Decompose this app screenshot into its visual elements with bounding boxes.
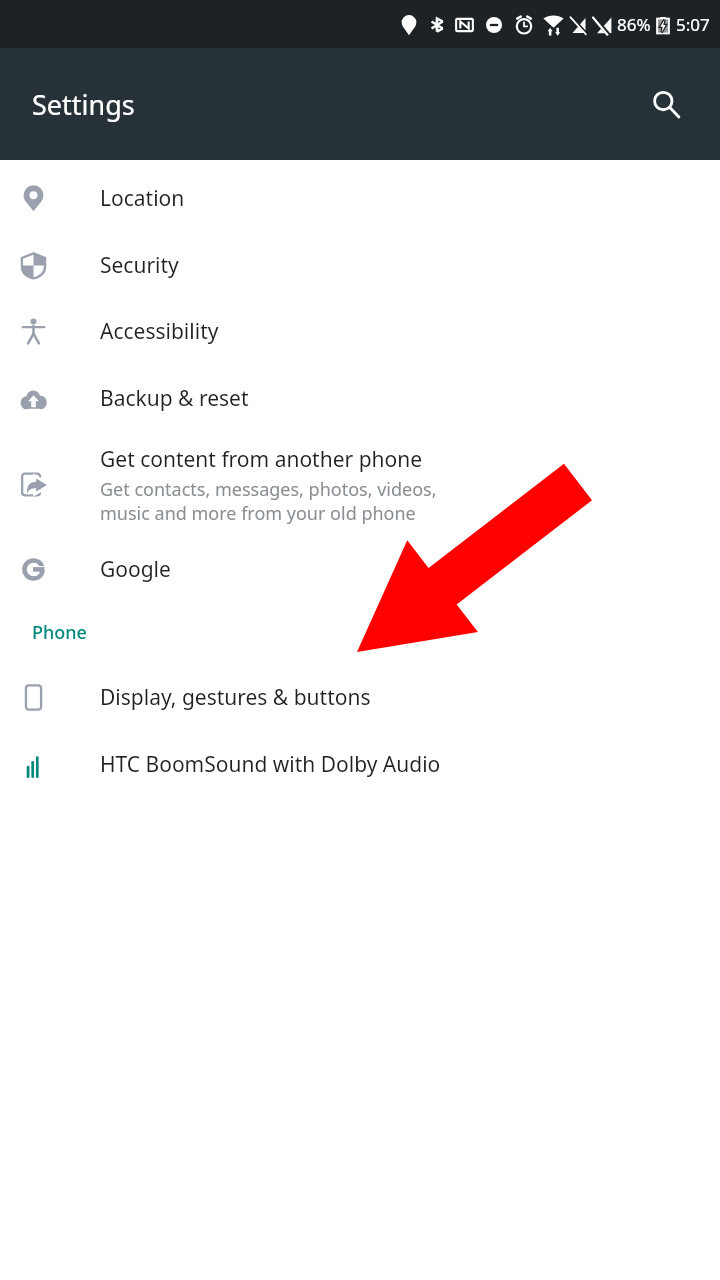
staticText: 5:07 — [676, 13, 710, 36]
staticText: Accessibility — [100, 317, 219, 346]
staticText: Security — [100, 251, 179, 280]
button[interactable]: Get content from another phone — [0, 432, 720, 537]
staticText: Get contacts, messages, photos, videos, … — [100, 477, 437, 525]
button[interactable]: Display, gestures & buttons — [0, 663, 720, 731]
staticText: Phone — [32, 620, 87, 645]
staticText: Display, gestures & buttons — [100, 683, 371, 712]
staticText: Settings — [32, 86, 135, 123]
button[interactable]: Search — [638, 76, 694, 132]
staticText: Backup & reset — [100, 384, 249, 413]
staticText: HTC BoomSound with Dolby Audio — [100, 750, 441, 779]
staticText: Google — [100, 555, 171, 584]
button[interactable]: Backup & reset — [0, 365, 720, 432]
staticText: Location — [100, 184, 185, 213]
staticText: 86% — [617, 13, 651, 36]
staticText: Get content from another phone — [100, 445, 423, 474]
button[interactable]: Accessibility — [0, 298, 720, 365]
button[interactable]: Security — [0, 232, 720, 298]
button[interactable]: HTC BoomSound with Dolby Audio — [0, 731, 720, 797]
button[interactable]: Google — [0, 537, 720, 601]
button[interactable]: Location — [0, 164, 720, 232]
